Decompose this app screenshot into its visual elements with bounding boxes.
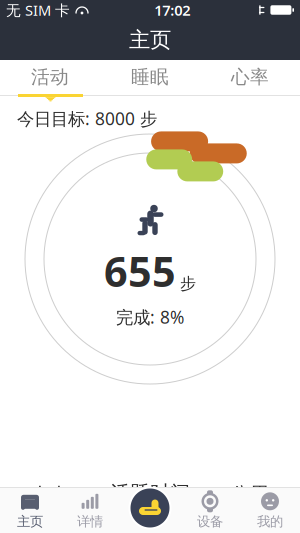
staticText: 主页 bbox=[129, 27, 171, 53]
staticText: 完成: 8% bbox=[116, 305, 184, 328]
button[interactable]: 心率 bbox=[200, 60, 300, 94]
staticText: 主页 bbox=[17, 513, 43, 530]
staticText: 详情 bbox=[77, 513, 103, 530]
staticText: 步 bbox=[180, 274, 196, 293]
button[interactable]: 设备 bbox=[180, 488, 240, 533]
staticText: 无 SIM 卡 bbox=[6, 0, 70, 20]
staticText: 大卡 bbox=[30, 483, 70, 508]
button[interactable]: 我的 bbox=[240, 488, 300, 533]
button[interactable]: 睡眠 bbox=[100, 60, 200, 94]
staticText: 设备 bbox=[197, 513, 223, 530]
staticText: 今日目标: 8000 步 bbox=[17, 107, 157, 130]
button[interactable]: 活动 bbox=[0, 60, 100, 94]
staticText: 心率 bbox=[231, 65, 269, 88]
button[interactable]: 详情 bbox=[60, 488, 120, 533]
staticText: 活跃时间 bbox=[110, 481, 190, 505]
staticText: 睡眠 bbox=[131, 65, 169, 88]
staticText: 我的 bbox=[257, 513, 283, 530]
button[interactable]: 主页 bbox=[0, 488, 60, 533]
staticText: 活动 bbox=[31, 65, 69, 88]
staticText: 17:02 bbox=[154, 0, 190, 20]
staticText: 655 bbox=[104, 244, 176, 298]
button[interactable]: 开始运动 bbox=[127, 485, 173, 531]
staticText: 公里 bbox=[230, 482, 270, 507]
